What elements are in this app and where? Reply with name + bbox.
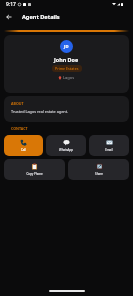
staticText: 9:17 xyxy=(6,1,16,8)
button[interactable]: Call xyxy=(4,135,43,156)
staticText: Email xyxy=(105,148,113,152)
staticText: JD xyxy=(64,44,69,50)
staticText: Prime Estates xyxy=(55,66,79,71)
staticText: Agent Details xyxy=(22,13,60,21)
staticText: ABOUT xyxy=(11,101,24,106)
staticText: Copy Phone xyxy=(26,172,43,176)
staticText: Trusted Lagos real estate agent. xyxy=(11,109,69,114)
staticText: Share xyxy=(95,172,103,176)
staticText: CONTACT xyxy=(11,126,28,131)
button[interactable]: Share xyxy=(68,159,129,180)
button[interactable]: Copy Phone xyxy=(4,159,65,180)
staticText: Call xyxy=(21,148,26,152)
staticText: WhatsApp xyxy=(59,148,73,152)
staticText: John Doe xyxy=(54,56,79,63)
button[interactable]: WhatsApp xyxy=(46,135,86,156)
button[interactable]: Back xyxy=(3,11,14,22)
staticText: Lagos xyxy=(63,75,75,80)
button[interactable]: Email xyxy=(89,135,129,156)
